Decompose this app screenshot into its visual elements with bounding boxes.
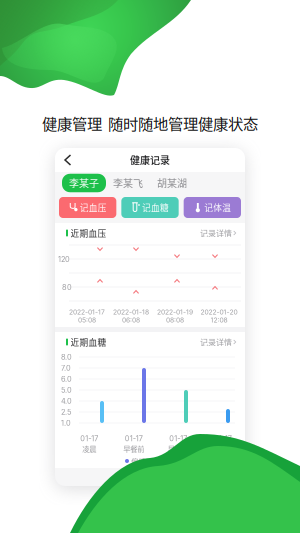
staticText: 早餐前 (123, 443, 144, 454)
staticText: 1.0 (61, 419, 71, 427)
staticText: 2022-01-20 (200, 308, 237, 316)
staticText: 01-17 (169, 434, 187, 443)
staticText: 2022-01-18 (113, 308, 149, 316)
staticText: 正常 (161, 456, 175, 466)
staticText: 5.0 (61, 386, 72, 394)
staticText: 记体温 (204, 201, 231, 214)
staticText: 早餐后 (168, 443, 189, 454)
staticText: 记血糖 (142, 201, 169, 214)
button[interactable]: 记录详情 (200, 223, 236, 243)
button[interactable]: 记录详情 (200, 332, 236, 352)
staticText: 01-17 (125, 434, 143, 443)
staticText: 2022-01-17 (69, 308, 105, 316)
staticText: 李某子 (69, 176, 99, 190)
staticText: 凌晨 (82, 443, 96, 454)
staticText: 05:08 (78, 316, 96, 324)
staticText: 偏低 (131, 456, 145, 466)
button[interactable]: 李某飞 (106, 174, 150, 192)
button[interactable]: 记血压 (59, 197, 116, 218)
staticText: 健康记录 (130, 153, 170, 167)
staticText: 06:08 (122, 316, 140, 324)
staticText: 健康管理 随时随地管理健康状态 (42, 112, 258, 134)
staticText: 12:08 (210, 316, 227, 324)
button[interactable]: 李某子 (62, 174, 106, 192)
staticText: 4.0 (61, 397, 72, 405)
staticText: 01-17 (214, 434, 232, 443)
staticText: 8.0 (61, 353, 72, 361)
staticText: 80 (62, 283, 72, 292)
staticText: 120 (58, 255, 70, 264)
staticText: 胡某湖 (157, 176, 187, 190)
staticText: 记血压 (80, 201, 107, 214)
staticText: 记录详情 (200, 227, 232, 239)
button[interactable]: 胡某湖 (150, 174, 194, 192)
staticText: 01-17 (80, 434, 98, 443)
staticText: 近期血压 (70, 227, 106, 239)
button[interactable]: 记体温 (184, 197, 241, 218)
staticText: 近期血糖 (70, 336, 106, 348)
button[interactable]: Back (55, 147, 79, 173)
button[interactable]: 记血糖 (121, 197, 179, 218)
staticText: 08:08 (166, 316, 184, 324)
staticText: 6.0 (61, 375, 72, 383)
staticText: 2022-01-19 (157, 308, 193, 316)
staticText: 午餐前 (212, 443, 233, 454)
staticText: 7.0 (61, 364, 71, 372)
staticText: 李某飞 (113, 176, 143, 190)
staticText: 记录详情 (200, 336, 232, 348)
staticText: 2.5 (61, 408, 71, 416)
